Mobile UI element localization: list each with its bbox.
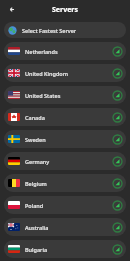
button[interactable]: United States — [4, 86, 126, 104]
button[interactable]: Sweden — [4, 130, 126, 148]
staticText: Poland — [25, 202, 113, 209]
staticText: Bulgaria — [25, 246, 113, 253]
staticText: Australia — [25, 224, 113, 231]
button[interactable]: Back — [6, 3, 19, 16]
button[interactable]: Australia — [4, 218, 126, 236]
staticText: United Kingdom — [25, 70, 113, 77]
button[interactable]: Poland — [4, 196, 126, 214]
button[interactable]: Bulgaria — [4, 240, 126, 258]
staticText: Netherlands — [25, 48, 113, 55]
staticText: Select Fastest Server — [22, 27, 122, 34]
staticText: Belgium — [25, 180, 113, 187]
button[interactable]: Select Fastest Server — [4, 22, 126, 38]
staticText: United States — [25, 92, 113, 99]
button[interactable]: United Kingdom — [4, 64, 126, 82]
button[interactable]: Belgium — [4, 174, 126, 192]
button[interactable]: Canada — [4, 108, 126, 126]
staticText: Canada — [25, 114, 113, 121]
button[interactable]: Germany — [4, 152, 126, 170]
staticText: Germany — [25, 158, 113, 165]
staticText: Sweden — [25, 136, 113, 143]
button[interactable]: Netherlands — [4, 42, 126, 60]
staticText: Servers — [52, 5, 78, 15]
